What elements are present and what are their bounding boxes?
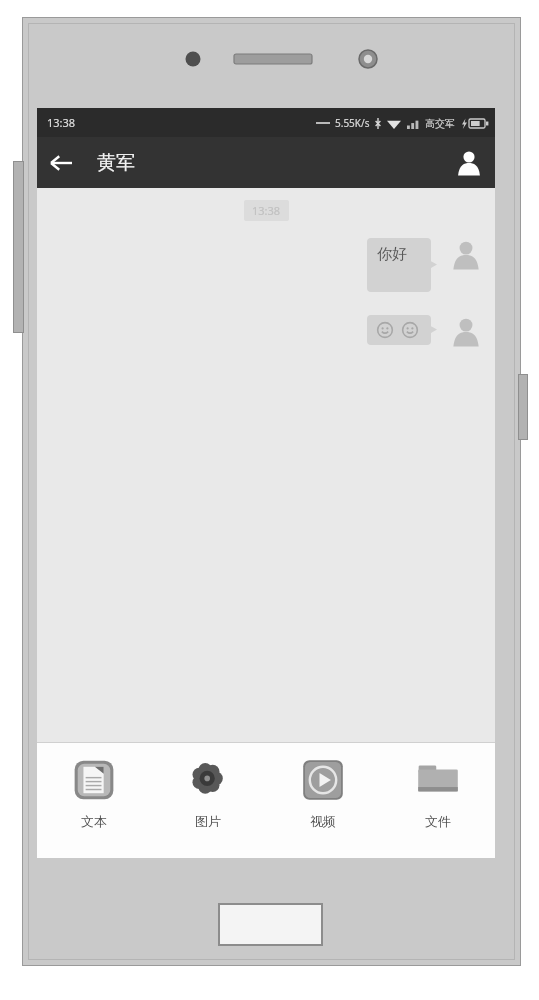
button[interactable]: 文本	[37, 743, 151, 858]
staticText: 你好	[377, 245, 407, 264]
staticText: 13:38	[47, 115, 76, 130]
button[interactable]	[367, 315, 431, 345]
staticText: 视频	[310, 813, 336, 829]
staticText: 13:38	[252, 203, 281, 218]
button[interactable]: 黄军	[97, 151, 135, 175]
button[interactable]: 你好	[367, 238, 431, 292]
staticText: 高交军	[425, 117, 455, 130]
button[interactable]: Avatar	[449, 238, 483, 272]
button[interactable]: Back	[37, 139, 85, 187]
staticText: 文件	[425, 813, 451, 829]
button[interactable]: Avatar	[449, 315, 483, 349]
button[interactable]: 视频	[265, 743, 380, 858]
staticText: 文本	[81, 813, 107, 829]
button[interactable]: 图片	[151, 743, 265, 858]
button[interactable]: Home	[218, 903, 323, 946]
button[interactable]: 文件	[380, 743, 495, 858]
staticText: 图片	[195, 813, 221, 829]
button[interactable]: Contact profile	[443, 137, 495, 188]
staticText: 5.55K/s	[335, 116, 370, 130]
